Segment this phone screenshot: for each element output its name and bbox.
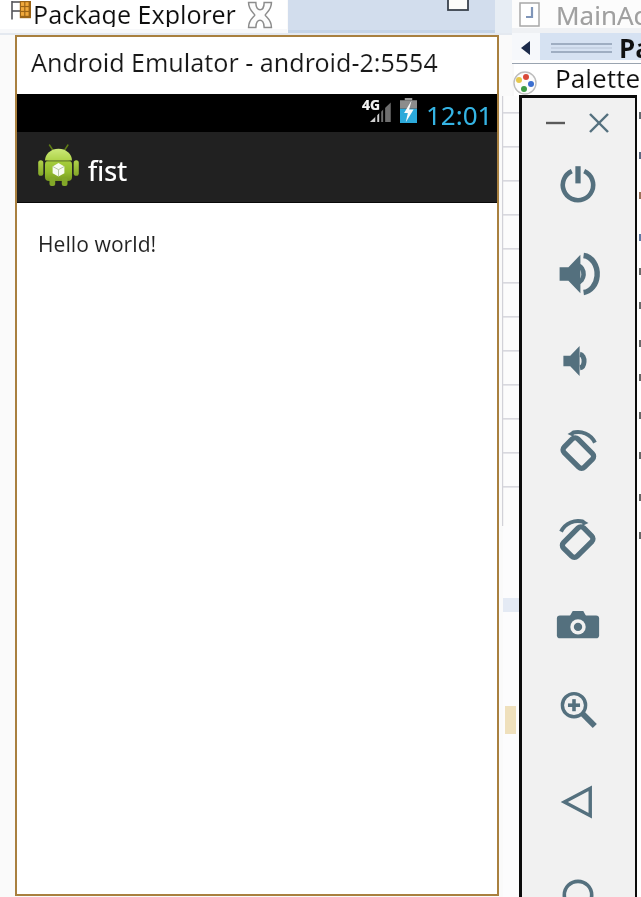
button[interactable]: Close xyxy=(582,106,616,140)
button[interactable]: Back xyxy=(543,767,613,837)
button[interactable]: MainAct xyxy=(512,0,641,28)
button[interactable]: Pa xyxy=(512,33,641,61)
button[interactable]: Power xyxy=(543,150,613,220)
button[interactable]: Minimize xyxy=(538,106,572,140)
staticText: Android Emulator - android-2:5554 xyxy=(31,45,438,79)
button[interactable]: Close Package Explorer tab xyxy=(245,0,275,30)
button[interactable]: Screenshot xyxy=(543,591,613,661)
button[interactable]: Palette xyxy=(512,64,641,96)
button[interactable]: Volume up xyxy=(543,239,613,309)
staticText: 4G xyxy=(362,95,381,114)
staticText: Palette xyxy=(555,60,641,92)
staticText: fist xyxy=(88,152,127,189)
staticText: 12:01 xyxy=(426,97,493,132)
button[interactable]: Zoom in xyxy=(543,675,613,745)
staticText: Package Explorer xyxy=(33,0,236,27)
button[interactable]: Rotate left xyxy=(543,415,613,485)
button[interactable]: Volume down xyxy=(543,326,613,396)
button[interactable]: Rotate right xyxy=(543,504,613,574)
button[interactable]: Home xyxy=(543,860,613,897)
button[interactable]: Restore window xyxy=(446,0,470,12)
staticText: Hello world! xyxy=(38,230,157,259)
staticText: MainAct xyxy=(556,0,641,25)
staticText: Pa xyxy=(619,30,641,58)
button[interactable]: Package Explorer xyxy=(0,0,245,30)
